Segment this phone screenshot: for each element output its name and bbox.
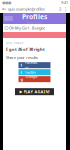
button[interactable]: t <box>18 69 50 75</box>
staticText: f <box>20 62 22 68</box>
staticText: g <box>20 76 23 82</box>
staticText: Google+ <box>25 74 37 84</box>
staticText: ⋮ <box>63 6 68 12</box>
staticText: 2 <box>59 6 61 12</box>
button[interactable]: g <box>18 76 50 82</box>
staticText: Oh My Girl - Bungee <box>9 25 45 31</box>
button[interactable]: f <box>18 62 50 68</box>
staticText: Facebook <box>24 60 37 70</box>
staticText: k-pop quiz <box>27 21 42 25</box>
staticText: QUIZ RESULTS <box>6 41 23 44</box>
button[interactable]: ▶ <box>15 88 54 95</box>
staticText: quiz.example/profiles <box>8 6 45 12</box>
staticText: ← <box>2 6 6 12</box>
staticText: PLAY AGAIN! <box>23 89 49 94</box>
staticText: I got 26 of 30 right <box>6 46 45 52</box>
staticText: Twitter <box>24 69 36 75</box>
staticText: 9:41 <box>61 0 68 5</box>
staticText: ▶ <box>19 89 22 94</box>
staticText: Share your results <box>6 55 38 60</box>
staticText: Profiles <box>22 12 47 21</box>
staticText: ●●● <box>2 0 11 5</box>
staticText: t <box>20 69 22 75</box>
